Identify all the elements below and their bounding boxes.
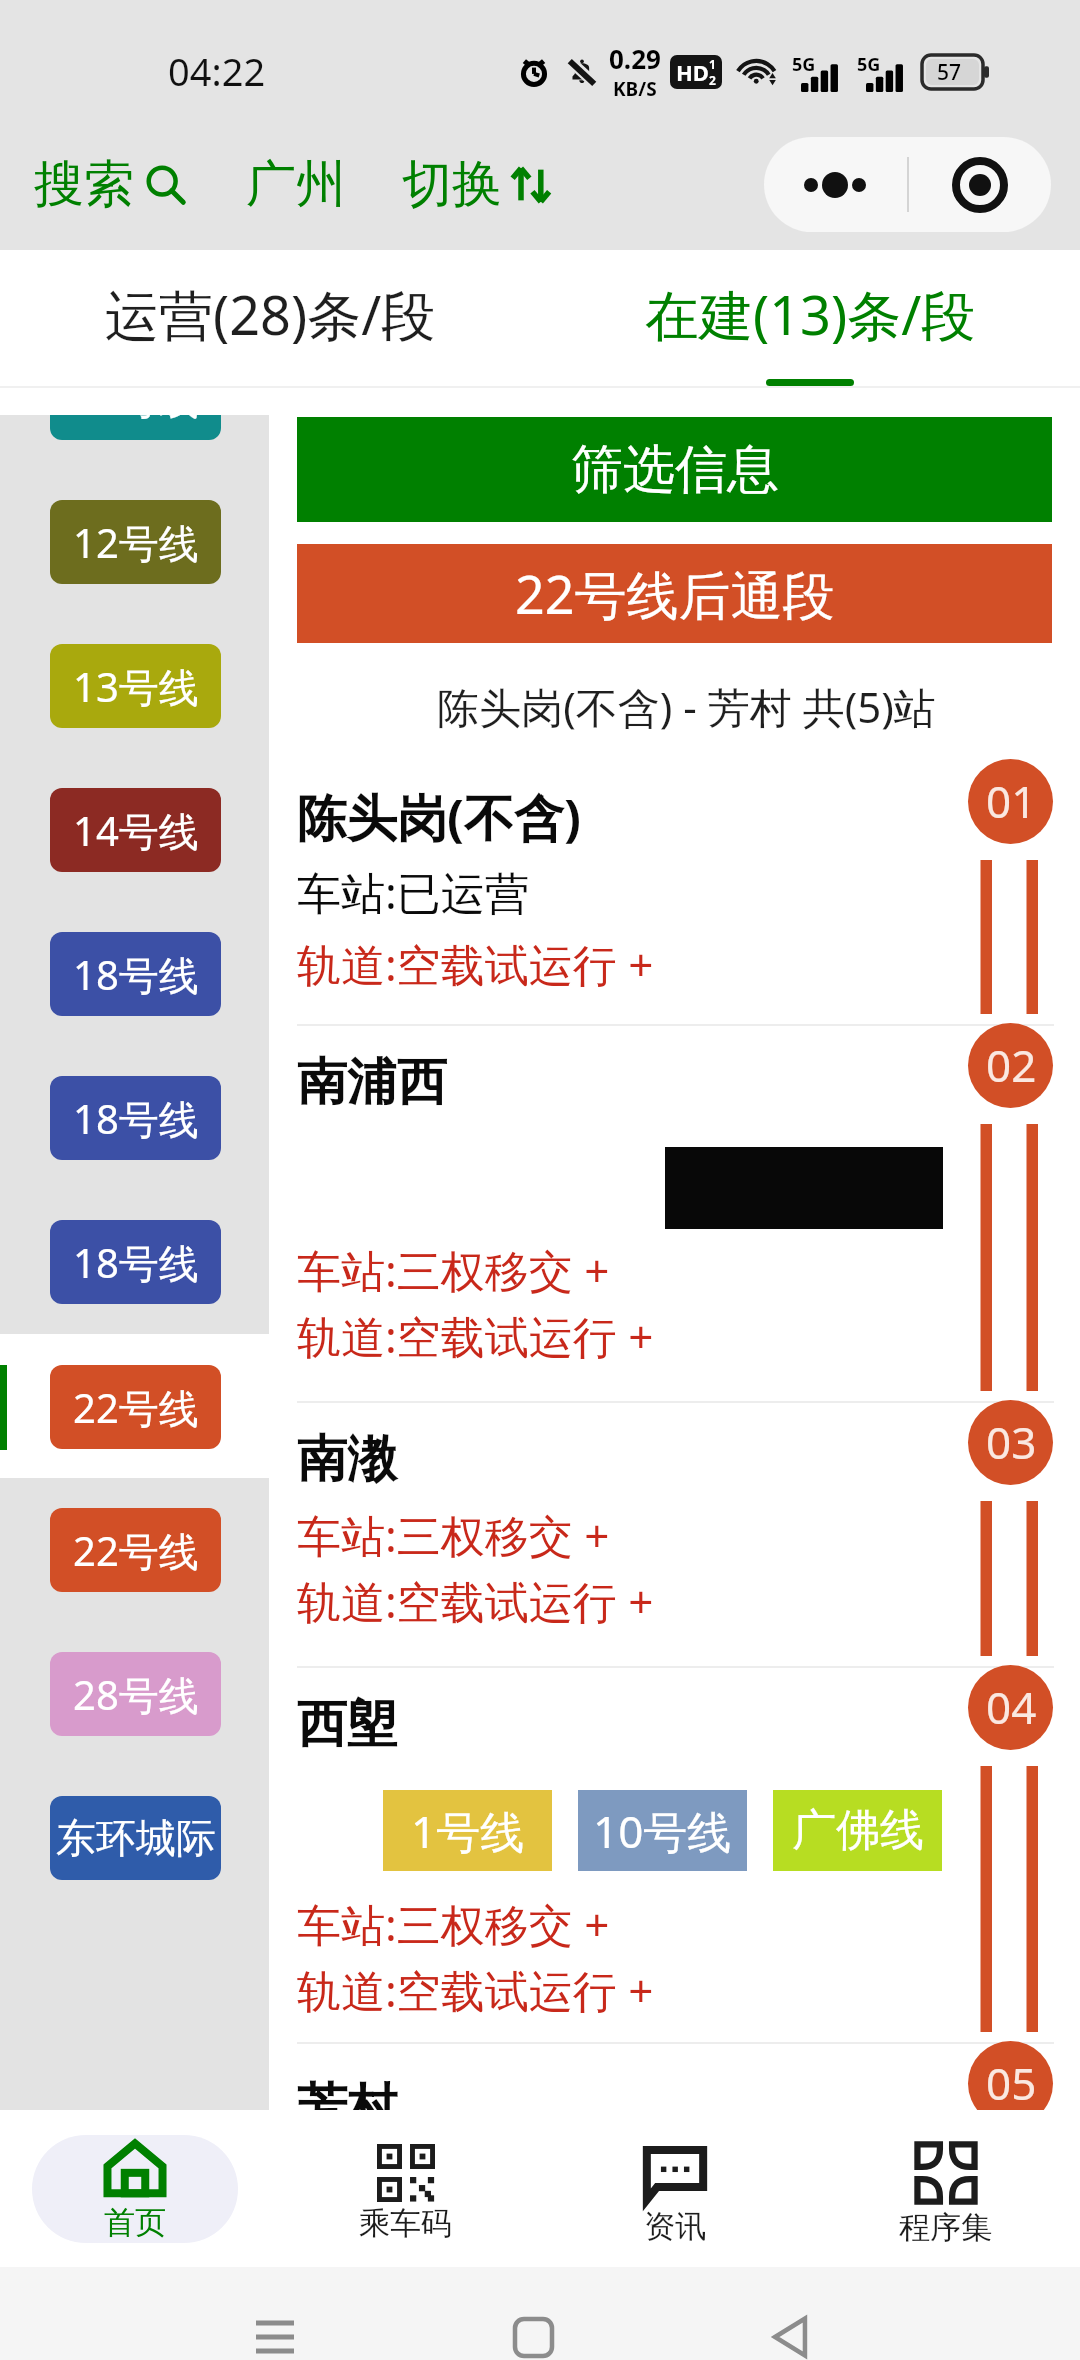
button[interactable]: Recents (239, 2301, 311, 2360)
staticText: 乘车码 (359, 2204, 452, 2243)
staticText: 18号线 (73, 1091, 199, 1146)
button[interactable]: 18号线 (50, 932, 221, 1016)
button[interactable]: 资讯 (540, 2110, 810, 2267)
staticText: 轨道:空载试运行 + (297, 934, 654, 994)
button[interactable]: 芳村 (269, 2042, 1080, 2110)
button[interactable]: 在建(13)条/段 (540, 250, 1080, 388)
staticText: 车站:三权移交 + (297, 1505, 610, 1565)
button[interactable]: 12号线 (50, 500, 221, 584)
staticText: 13号线 (73, 659, 199, 714)
button[interactable]: 22号线后通段 (297, 544, 1052, 643)
staticText: 车站:三权移交 + (297, 1240, 610, 1300)
staticText: 陈头岗(不含) - 芳村 共(5)站 (281, 678, 1080, 735)
button[interactable]: 22号线 (50, 1365, 221, 1449)
staticText: 28号线 (73, 1667, 199, 1722)
staticText: 南漖 (297, 1428, 397, 1491)
staticText: 陈头岗(不含) (297, 783, 581, 851)
staticText: 搜索 (34, 153, 134, 216)
button[interactable]: Back (754, 2301, 826, 2360)
button[interactable]: 陈头岗(不含) (269, 760, 1080, 1024)
staticText: 04 (986, 1677, 1037, 1737)
button[interactable]: 18号线 (50, 1220, 221, 1304)
button[interactable]: 首页 (32, 2135, 238, 2243)
button[interactable]: Home (497, 2301, 569, 2360)
staticText: 轨道:空载试运行 + (297, 1571, 654, 1631)
staticText: 18号线 (73, 1235, 199, 1290)
button[interactable]: 南浦西 (269, 1024, 1080, 1401)
staticText: 57 (937, 58, 962, 87)
staticText: 首页 (104, 2203, 166, 2242)
button[interactable]: 22号线 (50, 1508, 221, 1592)
staticText: 1 (709, 56, 716, 72)
button[interactable]: 西塱 (269, 1666, 1080, 2042)
staticText: 5G (792, 52, 816, 77)
button[interactable]: 18号线 (50, 1076, 221, 1160)
button[interactable]: 南漖 (269, 1401, 1080, 1666)
staticText: 西塱 (297, 1693, 397, 1756)
staticText: 广佛线 (792, 1803, 924, 1858)
staticText: 东环城际 (56, 1813, 216, 1863)
button[interactable]: 乘车码 (270, 2110, 540, 2267)
staticText: 1号线 (411, 1801, 525, 1861)
button[interactable]: 11号线 (50, 388, 221, 440)
staticText: 14号线 (73, 803, 199, 858)
button[interactable]: 14号线 (50, 788, 221, 872)
staticText: 5G (857, 52, 881, 77)
staticText: 程序集 (899, 2208, 992, 2247)
staticText: 0.29 (609, 41, 661, 76)
staticText: 03 (986, 1412, 1037, 1472)
button[interactable]: 搜索 (24, 145, 200, 224)
staticText: 2 (709, 72, 716, 88)
staticText: 轨道:空载试运行 + (297, 1960, 654, 2020)
button[interactable]: 运营(28)条/段 (0, 250, 540, 388)
staticText: 12号线 (73, 515, 199, 570)
staticText: 车站:三权移交 + (297, 1894, 610, 1954)
button[interactable]: 13号线 (50, 644, 221, 728)
staticText: 芳村 (297, 2076, 397, 2110)
button[interactable]: Close mini program (908, 137, 1051, 232)
staticText: 南浦西 (297, 1051, 447, 1114)
button[interactable]: 广州 (236, 145, 356, 224)
button[interactable]: 东环城际 (50, 1796, 221, 1880)
button[interactable]: More options (764, 137, 908, 232)
staticText: 22号线 (73, 1523, 199, 1578)
staticText: 车站:已运营 (297, 862, 529, 922)
button[interactable]: 切换 (392, 145, 564, 224)
staticText: 在建(13)条/段 (645, 277, 976, 351)
staticText: 18号线 (73, 947, 199, 1002)
button[interactable]: 筛选信息 (297, 417, 1052, 522)
staticText: 资讯 (644, 2207, 706, 2246)
staticText: 02 (986, 1035, 1037, 1095)
staticText: 轨道:空载试运行 + (297, 1306, 654, 1366)
staticText: 筛选信息 (571, 437, 779, 503)
button[interactable]: 10号线 (578, 1790, 747, 1871)
button[interactable]: 程序集 (810, 2110, 1080, 2267)
staticText: 22号线 (73, 1380, 199, 1435)
staticText: 10号线 (593, 1801, 732, 1861)
staticText: 05 (986, 2053, 1037, 2110)
staticText: KB/S (613, 76, 657, 102)
staticText: 01 (986, 771, 1037, 831)
staticText: 22号线后通段 (515, 558, 835, 629)
button[interactable]: 28号线 (50, 1652, 221, 1736)
button[interactable]: 广佛线 (773, 1790, 942, 1871)
staticText: 切换 (402, 153, 502, 216)
staticText: 04:22 (168, 45, 266, 97)
staticText: 运营(28)条/段 (105, 277, 436, 351)
staticText: HD (676, 57, 709, 87)
staticText: 11号线 (73, 388, 199, 426)
button[interactable]: 1号线 (383, 1790, 552, 1871)
